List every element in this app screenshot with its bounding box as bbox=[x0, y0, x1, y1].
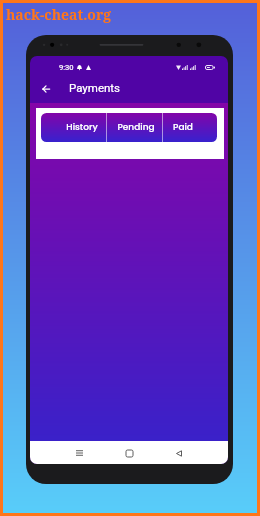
staticText: Pending bbox=[117, 121, 155, 134]
staticText: Payments bbox=[69, 81, 121, 94]
button[interactable]: Home bbox=[120, 444, 138, 462]
staticText: hack-cheat.org bbox=[6, 5, 112, 24]
staticText: Paid bbox=[173, 121, 193, 134]
button[interactable]: History bbox=[41, 113, 106, 142]
staticText: 9:30 bbox=[59, 63, 74, 72]
button[interactable]: Pending bbox=[106, 113, 162, 142]
staticText: History bbox=[66, 121, 98, 134]
button[interactable]: Recents bbox=[70, 444, 88, 462]
button[interactable]: Back bbox=[170, 444, 188, 462]
button[interactable]: Back bbox=[32, 75, 60, 103]
button[interactable]: Paid bbox=[162, 113, 217, 142]
